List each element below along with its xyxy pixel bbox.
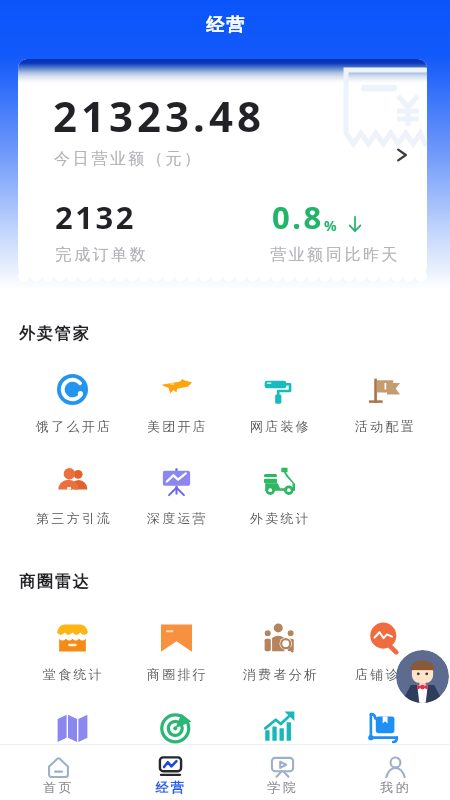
staticText: 网店装修 xyxy=(250,418,311,434)
staticText: 商圈排行 xyxy=(147,666,208,682)
staticText: 营业额同比昨天 xyxy=(270,245,401,265)
button[interactable]: View details xyxy=(386,139,418,171)
staticText: 活动配置 xyxy=(355,418,416,434)
button[interactable] xyxy=(28,711,118,773)
button[interactable] xyxy=(235,711,325,773)
button[interactable]: 我的 xyxy=(337,745,450,800)
button[interactable]: 店铺诊断 xyxy=(340,622,430,684)
staticText: 堂食统计 xyxy=(43,666,104,682)
staticText: 外卖管家 xyxy=(19,324,91,344)
staticText: 商圈雷达 xyxy=(19,572,91,592)
staticText: 首页 xyxy=(42,779,73,795)
staticText: 消费者分析 xyxy=(242,666,318,682)
button[interactable] xyxy=(132,711,222,773)
button[interactable]: 经营 xyxy=(112,745,224,800)
staticText: 外卖统计 xyxy=(250,510,311,526)
staticText: 0.8 xyxy=(272,196,324,238)
staticText: 完成订单数 xyxy=(54,245,147,265)
staticText: % xyxy=(324,216,337,235)
button[interactable]: 学院 xyxy=(224,745,337,800)
staticText: 美团开店 xyxy=(147,418,208,434)
button[interactable] xyxy=(340,711,430,773)
button[interactable]: 第三方引流 xyxy=(28,466,118,528)
button[interactable]: 活动配置 xyxy=(340,374,430,436)
button[interactable]: 网店装修 xyxy=(235,374,325,436)
staticText: 21323.48 xyxy=(53,87,265,144)
button[interactable]: 消费者分析 xyxy=(235,622,325,684)
staticText: 2132 xyxy=(55,196,136,238)
staticText: 店铺诊断 xyxy=(355,666,416,682)
button[interactable]: 商圈排行 xyxy=(132,622,222,684)
button[interactable]: 深度运营 xyxy=(132,466,222,528)
staticText: 经营 xyxy=(205,14,245,37)
staticText: 经营 xyxy=(154,779,185,795)
staticText: 饿了么开店 xyxy=(35,418,111,434)
button[interactable]: 外卖统计 xyxy=(235,466,325,528)
staticText: 深度运营 xyxy=(147,510,208,526)
button[interactable]: 首页 xyxy=(0,745,112,800)
button[interactable]: Customer service assistant xyxy=(396,650,449,703)
staticText: 第三方引流 xyxy=(35,510,111,526)
staticText: 今日营业额（元） xyxy=(54,149,203,169)
staticText: 我的 xyxy=(379,779,410,795)
button[interactable]: 饿了么开店 xyxy=(28,374,118,436)
button[interactable]: 堂食统计 xyxy=(28,622,118,684)
button[interactable]: 美团开店 xyxy=(132,374,222,436)
staticText: 学院 xyxy=(266,779,297,795)
